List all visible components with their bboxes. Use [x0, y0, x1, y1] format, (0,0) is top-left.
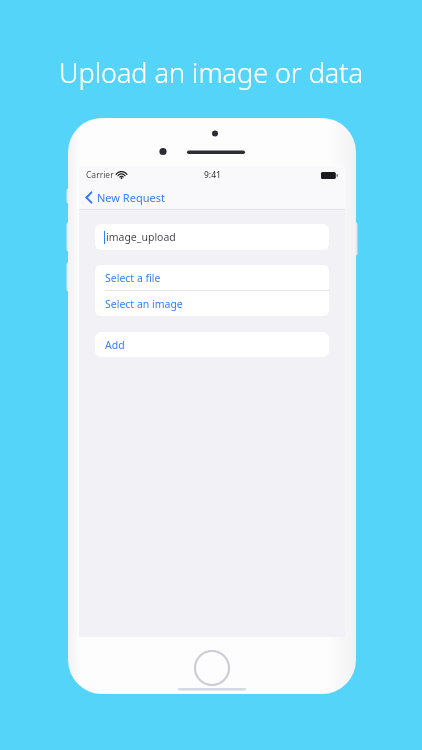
- button[interactable]: image_upload: [95, 224, 329, 250]
- staticText: Select an image: [105, 297, 183, 311]
- staticText: image_upload: [106, 230, 176, 244]
- staticText: Upload an image or data: [0, 54, 422, 91]
- button[interactable]: Add: [95, 332, 329, 357]
- staticText: Carrier: [86, 169, 114, 181]
- staticText: Add: [105, 338, 125, 352]
- staticText: New Request: [97, 190, 165, 205]
- other: Back: [85, 191, 93, 204]
- staticText: 9:41: [204, 169, 221, 181]
- button[interactable]: Back: [79, 187, 173, 208]
- button[interactable]: Select a file: [95, 265, 329, 290]
- staticText: Select a file: [105, 271, 161, 285]
- button[interactable]: Select an image: [95, 291, 329, 316]
